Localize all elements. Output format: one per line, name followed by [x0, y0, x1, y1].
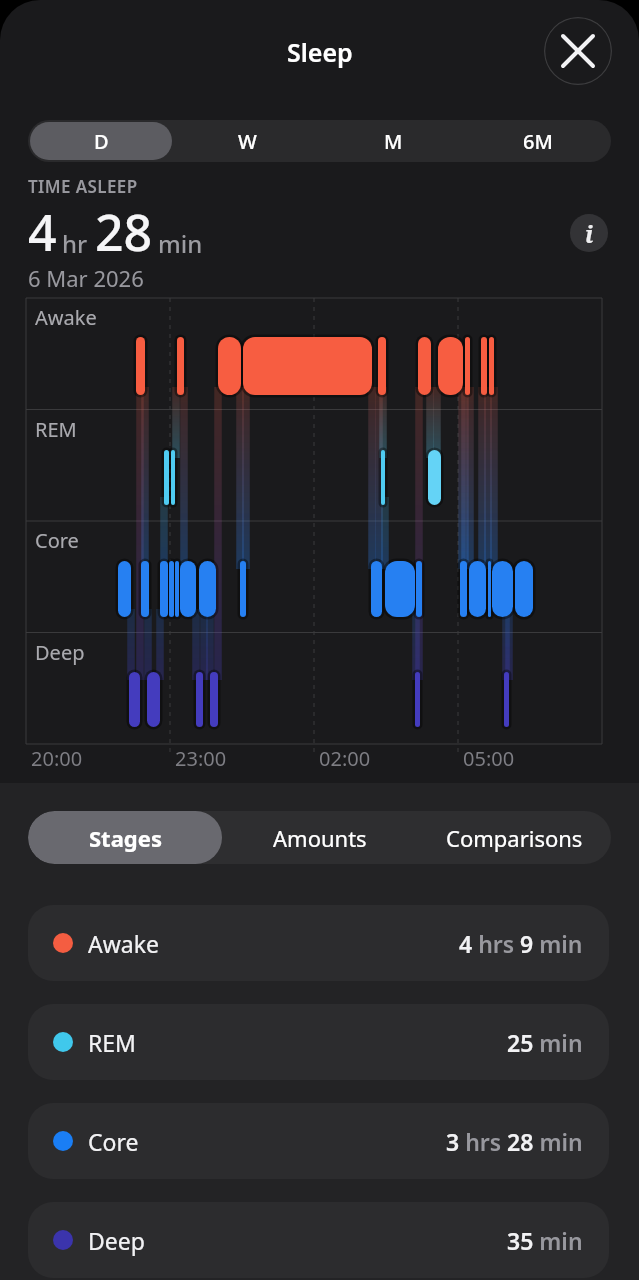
staticText: REM [88, 1027, 136, 1058]
staticText: Core [88, 1126, 139, 1157]
button[interactable]: M [320, 120, 466, 162]
staticText: 3 hrs 28 min [446, 1126, 583, 1157]
staticText: Comparisons [446, 823, 583, 853]
staticText: 02:00 [319, 745, 371, 772]
staticText: Stages [89, 823, 162, 853]
staticText: 4 [28, 198, 57, 266]
button[interactable]: W [174, 120, 320, 162]
staticText: W [238, 128, 257, 155]
button[interactable]: Stages [28, 811, 223, 864]
staticText: TIME ASLEEP [28, 175, 138, 198]
staticText: 05:00 [463, 745, 515, 772]
staticText: Amounts [273, 823, 367, 853]
button[interactable]: i [570, 214, 608, 252]
staticText: 35 min [507, 1225, 583, 1256]
staticText: min [158, 227, 203, 260]
staticText: 4 hrs 9 min [459, 928, 583, 959]
button[interactable]: 6M [465, 120, 611, 162]
staticText: Awake [88, 928, 159, 959]
button[interactable] [544, 17, 612, 85]
staticText: Sleep [287, 35, 353, 69]
staticText: hr [62, 227, 88, 260]
staticText: Deep [35, 639, 85, 666]
button[interactable]: Core [28, 1103, 609, 1179]
button[interactable]: Awake [28, 905, 609, 981]
staticText: Awake [35, 304, 97, 331]
staticText: Deep [88, 1225, 145, 1256]
staticText: 6M [523, 128, 553, 155]
staticText: 23:00 [175, 745, 227, 772]
staticText: 28 [95, 198, 153, 266]
button[interactable]: Deep [28, 1202, 609, 1278]
staticText: 6 Mar 2026 [28, 263, 144, 293]
button[interactable]: REM [28, 1004, 609, 1080]
button[interactable]: Amounts [222, 811, 417, 864]
staticText: i [585, 218, 594, 249]
staticText: D [94, 128, 109, 155]
staticText: M [384, 128, 403, 155]
staticText: REM [35, 416, 77, 443]
staticText: 20:00 [31, 745, 83, 772]
button[interactable]: Comparisons [417, 811, 611, 864]
button[interactable]: D [28, 120, 174, 162]
staticText: Core [35, 527, 79, 554]
staticText: 25 min [507, 1027, 583, 1058]
